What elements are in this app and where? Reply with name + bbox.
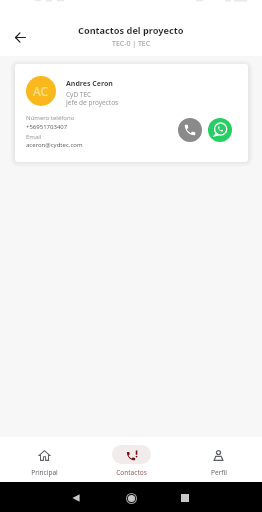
staticText: Jefe de proyectos: [66, 98, 119, 107]
button[interactable]: WhatsApp: [208, 118, 232, 142]
staticText: TEC-0 | TEC: [112, 39, 151, 49]
staticText: Contactos: [116, 468, 147, 477]
button[interactable]: Contactos: [88, 437, 175, 482]
button[interactable]: Perfil: [175, 437, 262, 482]
staticText: +56951703407: [26, 123, 68, 131]
button[interactable]: Llamar: [178, 118, 202, 142]
button[interactable]: Principal: [0, 437, 88, 482]
button[interactable]: Atrás: [64, 486, 88, 510]
button[interactable]: Inicio: [119, 486, 143, 510]
button[interactable]: Back: [9, 26, 31, 48]
staticText: Principal: [31, 468, 58, 477]
staticText: Email: [26, 133, 42, 141]
staticText: CyD TEC: [66, 90, 92, 99]
staticText: Perfil: [211, 468, 227, 477]
staticText: Contactos del proyecto: [78, 24, 184, 37]
button[interactable]: [15, 64, 248, 162]
staticText: AC: [33, 83, 49, 99]
staticText: Número teléfono: [26, 114, 75, 122]
button[interactable]: Recientes: [173, 486, 197, 510]
staticText: aceron@cydtec.com: [26, 141, 83, 149]
staticText: Andres Ceron: [66, 79, 113, 89]
